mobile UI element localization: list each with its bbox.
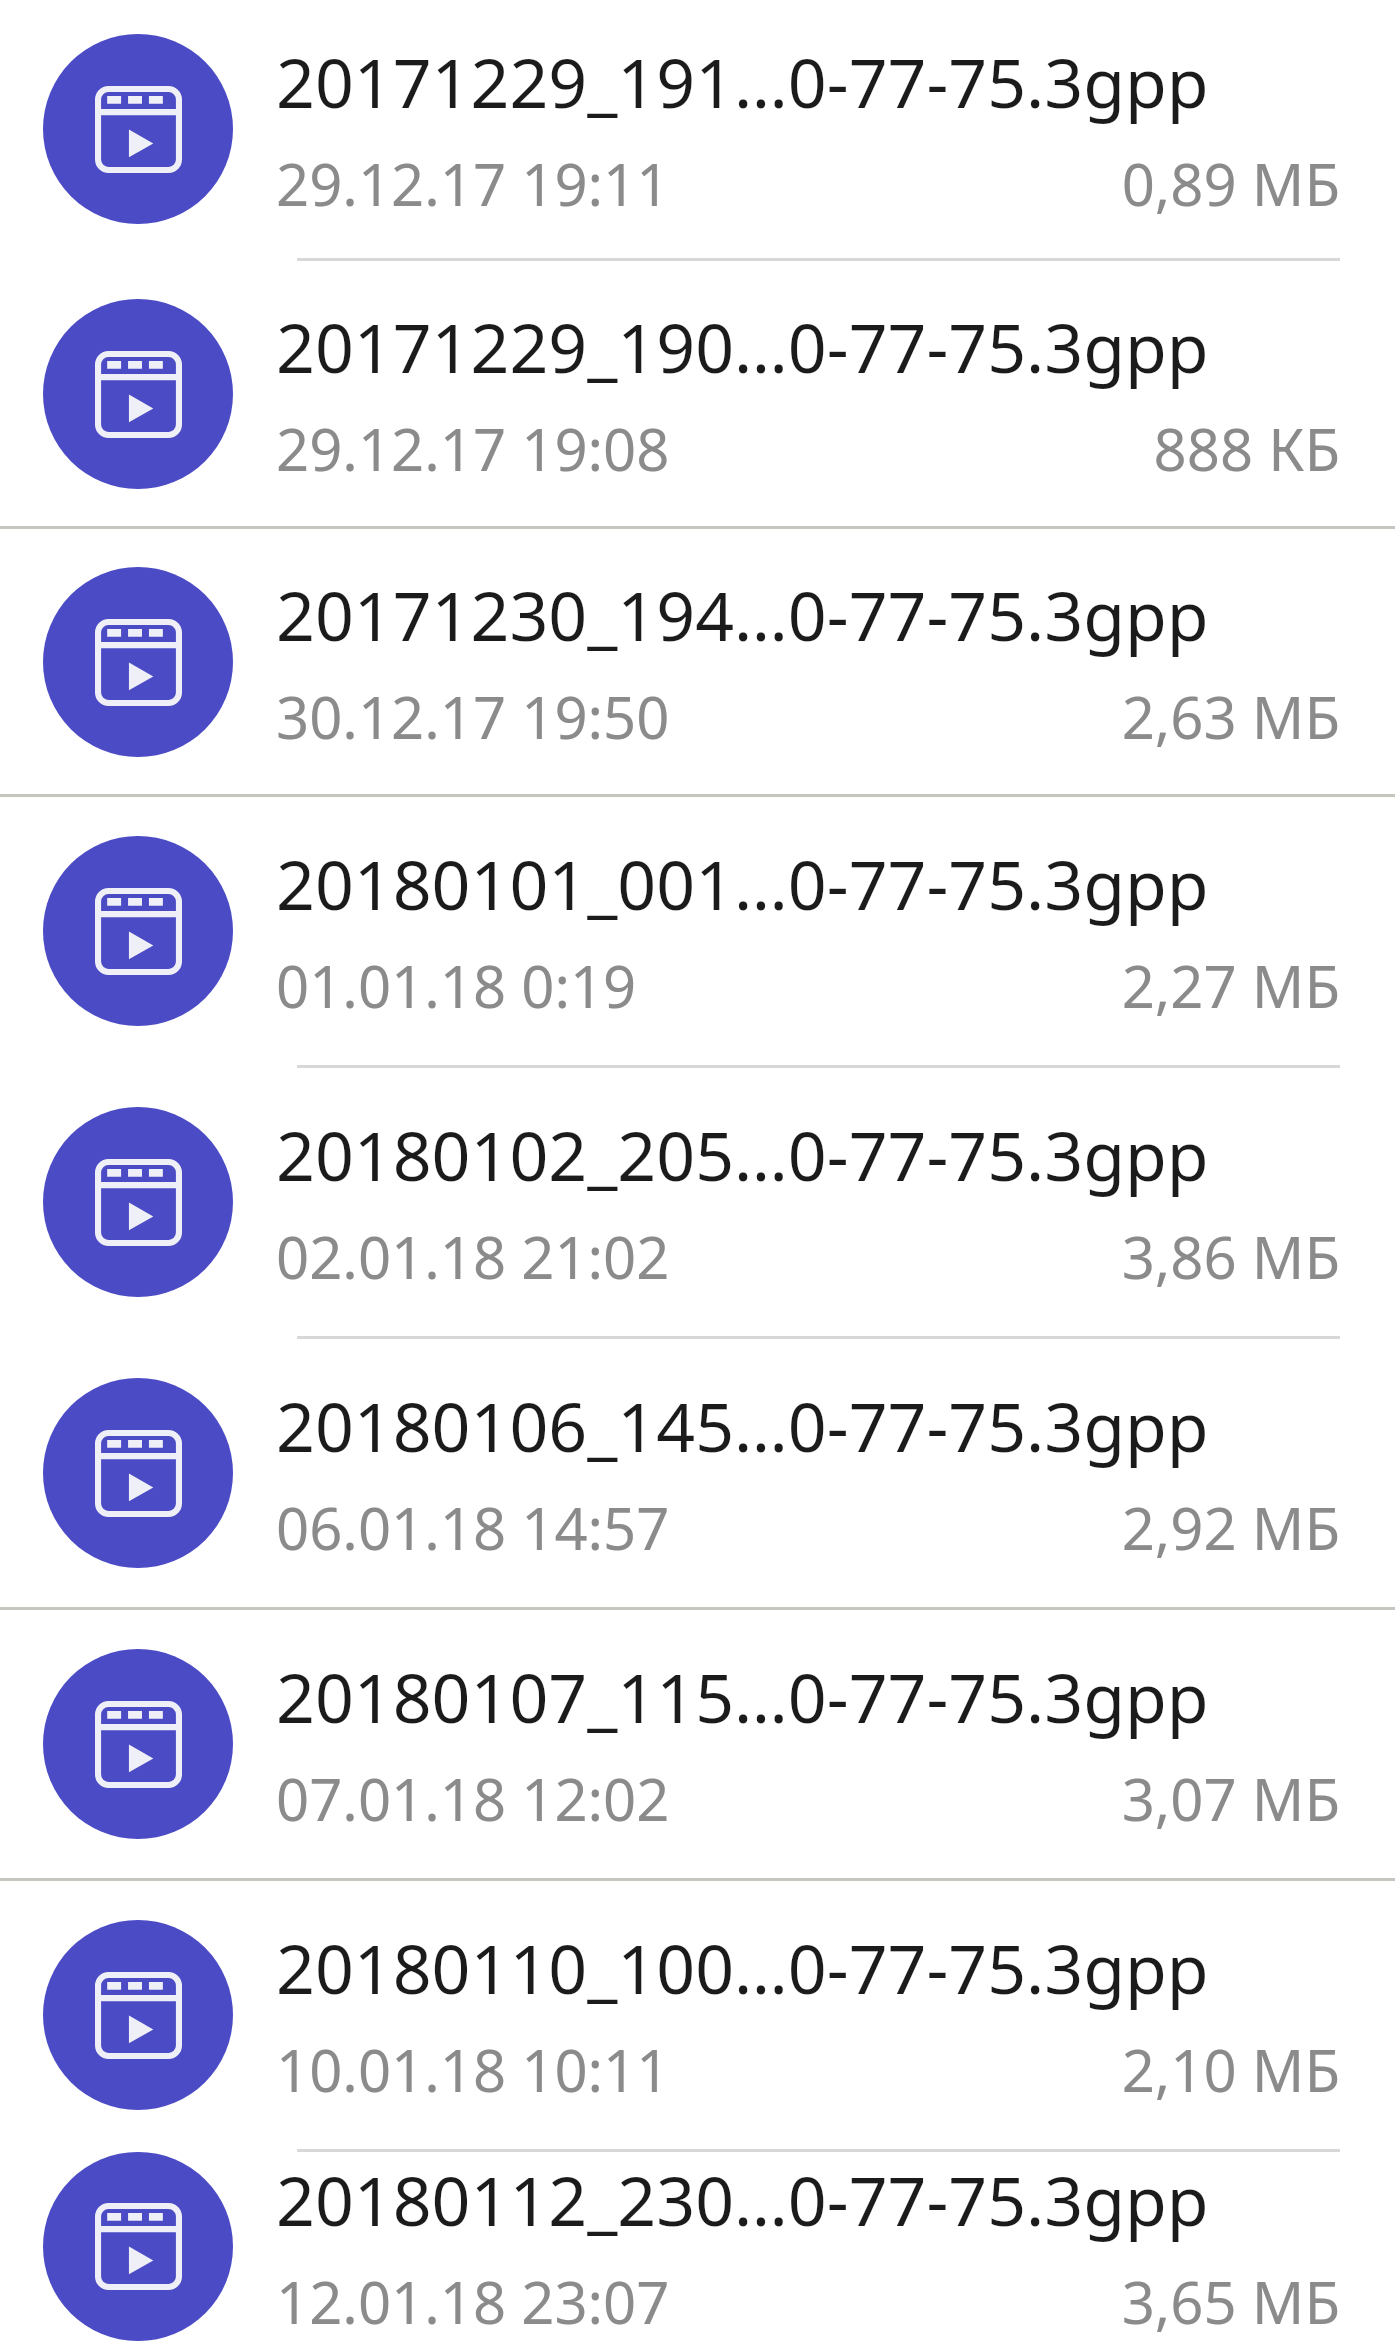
staticText: 29.12.17 19:08 [276, 409, 670, 488]
staticText: 2,10 МБ [1121, 2030, 1340, 2109]
staticText: 20180107_115…0-77-75.3gpp [276, 1650, 1209, 1743]
staticText: 20180112_230…0-77-75.3gpp [276, 2153, 1209, 2246]
other: Video file [43, 1649, 233, 1839]
other: Video file [43, 1920, 233, 2110]
staticText: 30.12.17 19:50 [276, 677, 670, 756]
staticText: 29.12.17 19:11 [276, 144, 670, 223]
staticText: 20180101_001…0-77-75.3gpp [276, 837, 1209, 930]
other: Video file [43, 1107, 233, 1297]
other: Video file [43, 299, 233, 489]
other: Video file [43, 2152, 233, 2341]
staticText: 2,92 МБ [1121, 1488, 1340, 1567]
staticText: 12.01.18 23:07 [276, 2262, 670, 2341]
staticText: 06.01.18 14:57 [276, 1488, 670, 1567]
button[interactable]: Video file [0, 1881, 1395, 2149]
staticText: 20171229_190…0-77-75.3gpp [276, 300, 1209, 393]
staticText: 20171229_191…0-77-75.3gpp [276, 35, 1209, 128]
button[interactable]: Video file [0, 529, 1395, 794]
button[interactable]: Video file [0, 1610, 1395, 1878]
button[interactable]: Video file [0, 1068, 1395, 1336]
staticText: 3,86 МБ [1121, 1217, 1340, 1296]
staticText: 07.01.18 12:02 [276, 1759, 670, 1838]
other: Video file [43, 34, 233, 224]
staticText: 888 КБ [1153, 409, 1340, 488]
button[interactable]: Video file [0, 0, 1395, 258]
staticText: 2,63 МБ [1121, 677, 1340, 756]
staticText: 01.01.18 0:19 [276, 946, 637, 1025]
staticText: 20180110_100…0-77-75.3gpp [276, 1921, 1209, 2014]
button[interactable]: Video file [0, 261, 1395, 526]
staticText: 20180106_145…0-77-75.3gpp [276, 1379, 1209, 1472]
staticText: 2,27 МБ [1121, 946, 1340, 1025]
other: Video file [43, 567, 233, 757]
other: Video file [43, 1378, 233, 1568]
staticText: 0,89 МБ [1121, 144, 1340, 223]
button[interactable]: Video file [0, 2152, 1395, 2341]
staticText: 02.01.18 21:02 [276, 1217, 670, 1296]
staticText: 3,07 МБ [1121, 1759, 1340, 1838]
staticText: 3,65 МБ [1121, 2262, 1340, 2341]
staticText: 20171230_194…0-77-75.3gpp [276, 568, 1209, 661]
staticText: 20180102_205…0-77-75.3gpp [276, 1108, 1209, 1201]
button[interactable]: Video file [0, 797, 1395, 1065]
staticText: 10.01.18 10:11 [276, 2030, 670, 2109]
button[interactable]: Video file [0, 1339, 1395, 1607]
other: Video file [43, 836, 233, 1026]
